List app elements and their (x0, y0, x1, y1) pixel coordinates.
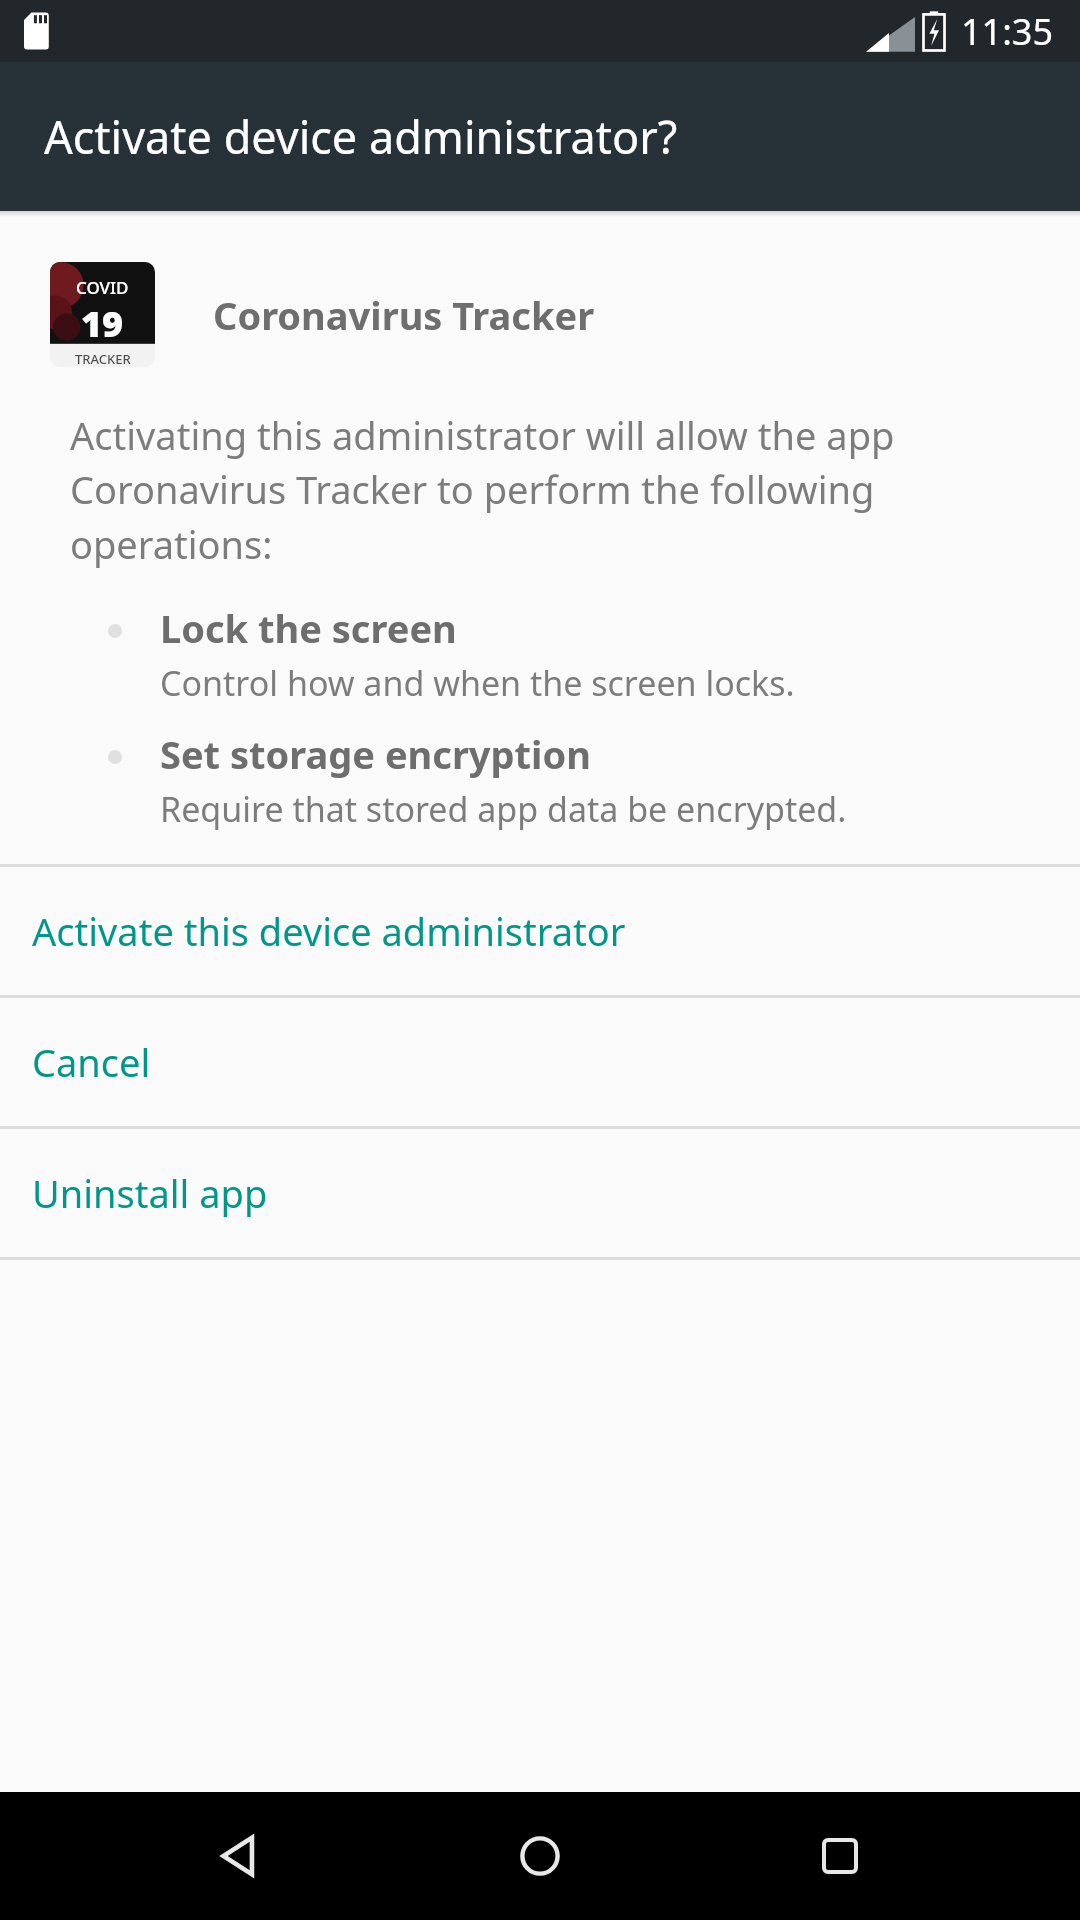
button[interactable]: Uninstall app (0, 1129, 1080, 1257)
button[interactable]: Cancel (0, 998, 1080, 1126)
staticText: Cancel (32, 1036, 151, 1088)
staticText: Activate device administrator? (44, 106, 678, 167)
button[interactable]: Back (180, 1796, 300, 1916)
staticText: COVID (76, 276, 129, 299)
button[interactable]: Activate this device administrator (0, 867, 1080, 995)
staticText: 19 (81, 299, 124, 348)
button[interactable]: Recent apps (780, 1796, 900, 1916)
button[interactable]: Home (480, 1796, 600, 1916)
staticText: Require that stored app data be encrypte… (160, 786, 847, 832)
staticText: Activate this device administrator (32, 905, 626, 957)
staticText: Control how and when the screen locks. (160, 660, 795, 706)
staticText: Set storage encryption (160, 728, 591, 780)
staticText: TRACKER (75, 350, 131, 367)
staticText: 11:35 (961, 7, 1054, 56)
staticText: Uninstall app (32, 1167, 268, 1219)
staticText: Coronavirus Tracker (213, 289, 595, 341)
staticText: Lock the screen (160, 602, 457, 654)
staticText: Activating this administrator will allow… (70, 409, 970, 570)
